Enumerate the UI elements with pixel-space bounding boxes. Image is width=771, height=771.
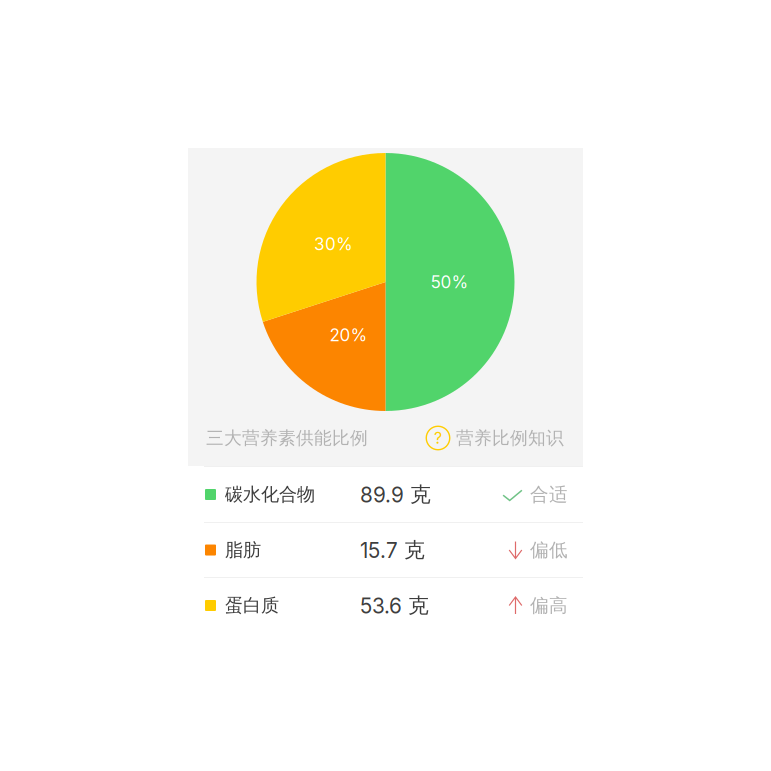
staticText: ? xyxy=(434,428,442,448)
staticText: 15.7 克 xyxy=(360,537,425,563)
staticText: 20% xyxy=(329,325,367,345)
staticText: 三大营养素供能比例 xyxy=(206,427,368,449)
staticText: 营养比例知识 xyxy=(456,427,564,449)
staticText: 碳水化合物 xyxy=(225,483,315,506)
button[interactable]: 脂肪 xyxy=(188,523,583,577)
staticText: 53.6 克 xyxy=(360,592,429,619)
staticText: 偏高 xyxy=(530,594,568,617)
staticText: 脂肪 xyxy=(225,539,261,561)
button[interactable]: 碳水化合物 xyxy=(188,467,583,522)
staticText: 30% xyxy=(314,234,353,254)
staticText: 偏低 xyxy=(530,538,568,562)
staticText: 50% xyxy=(430,272,468,292)
staticText: 蛋白质 xyxy=(225,594,279,617)
staticText: 合适 xyxy=(530,483,568,506)
button[interactable]: ? xyxy=(426,426,564,450)
button[interactable]: 蛋白质 xyxy=(188,578,583,633)
staticText: 89.9 克 xyxy=(360,481,431,508)
